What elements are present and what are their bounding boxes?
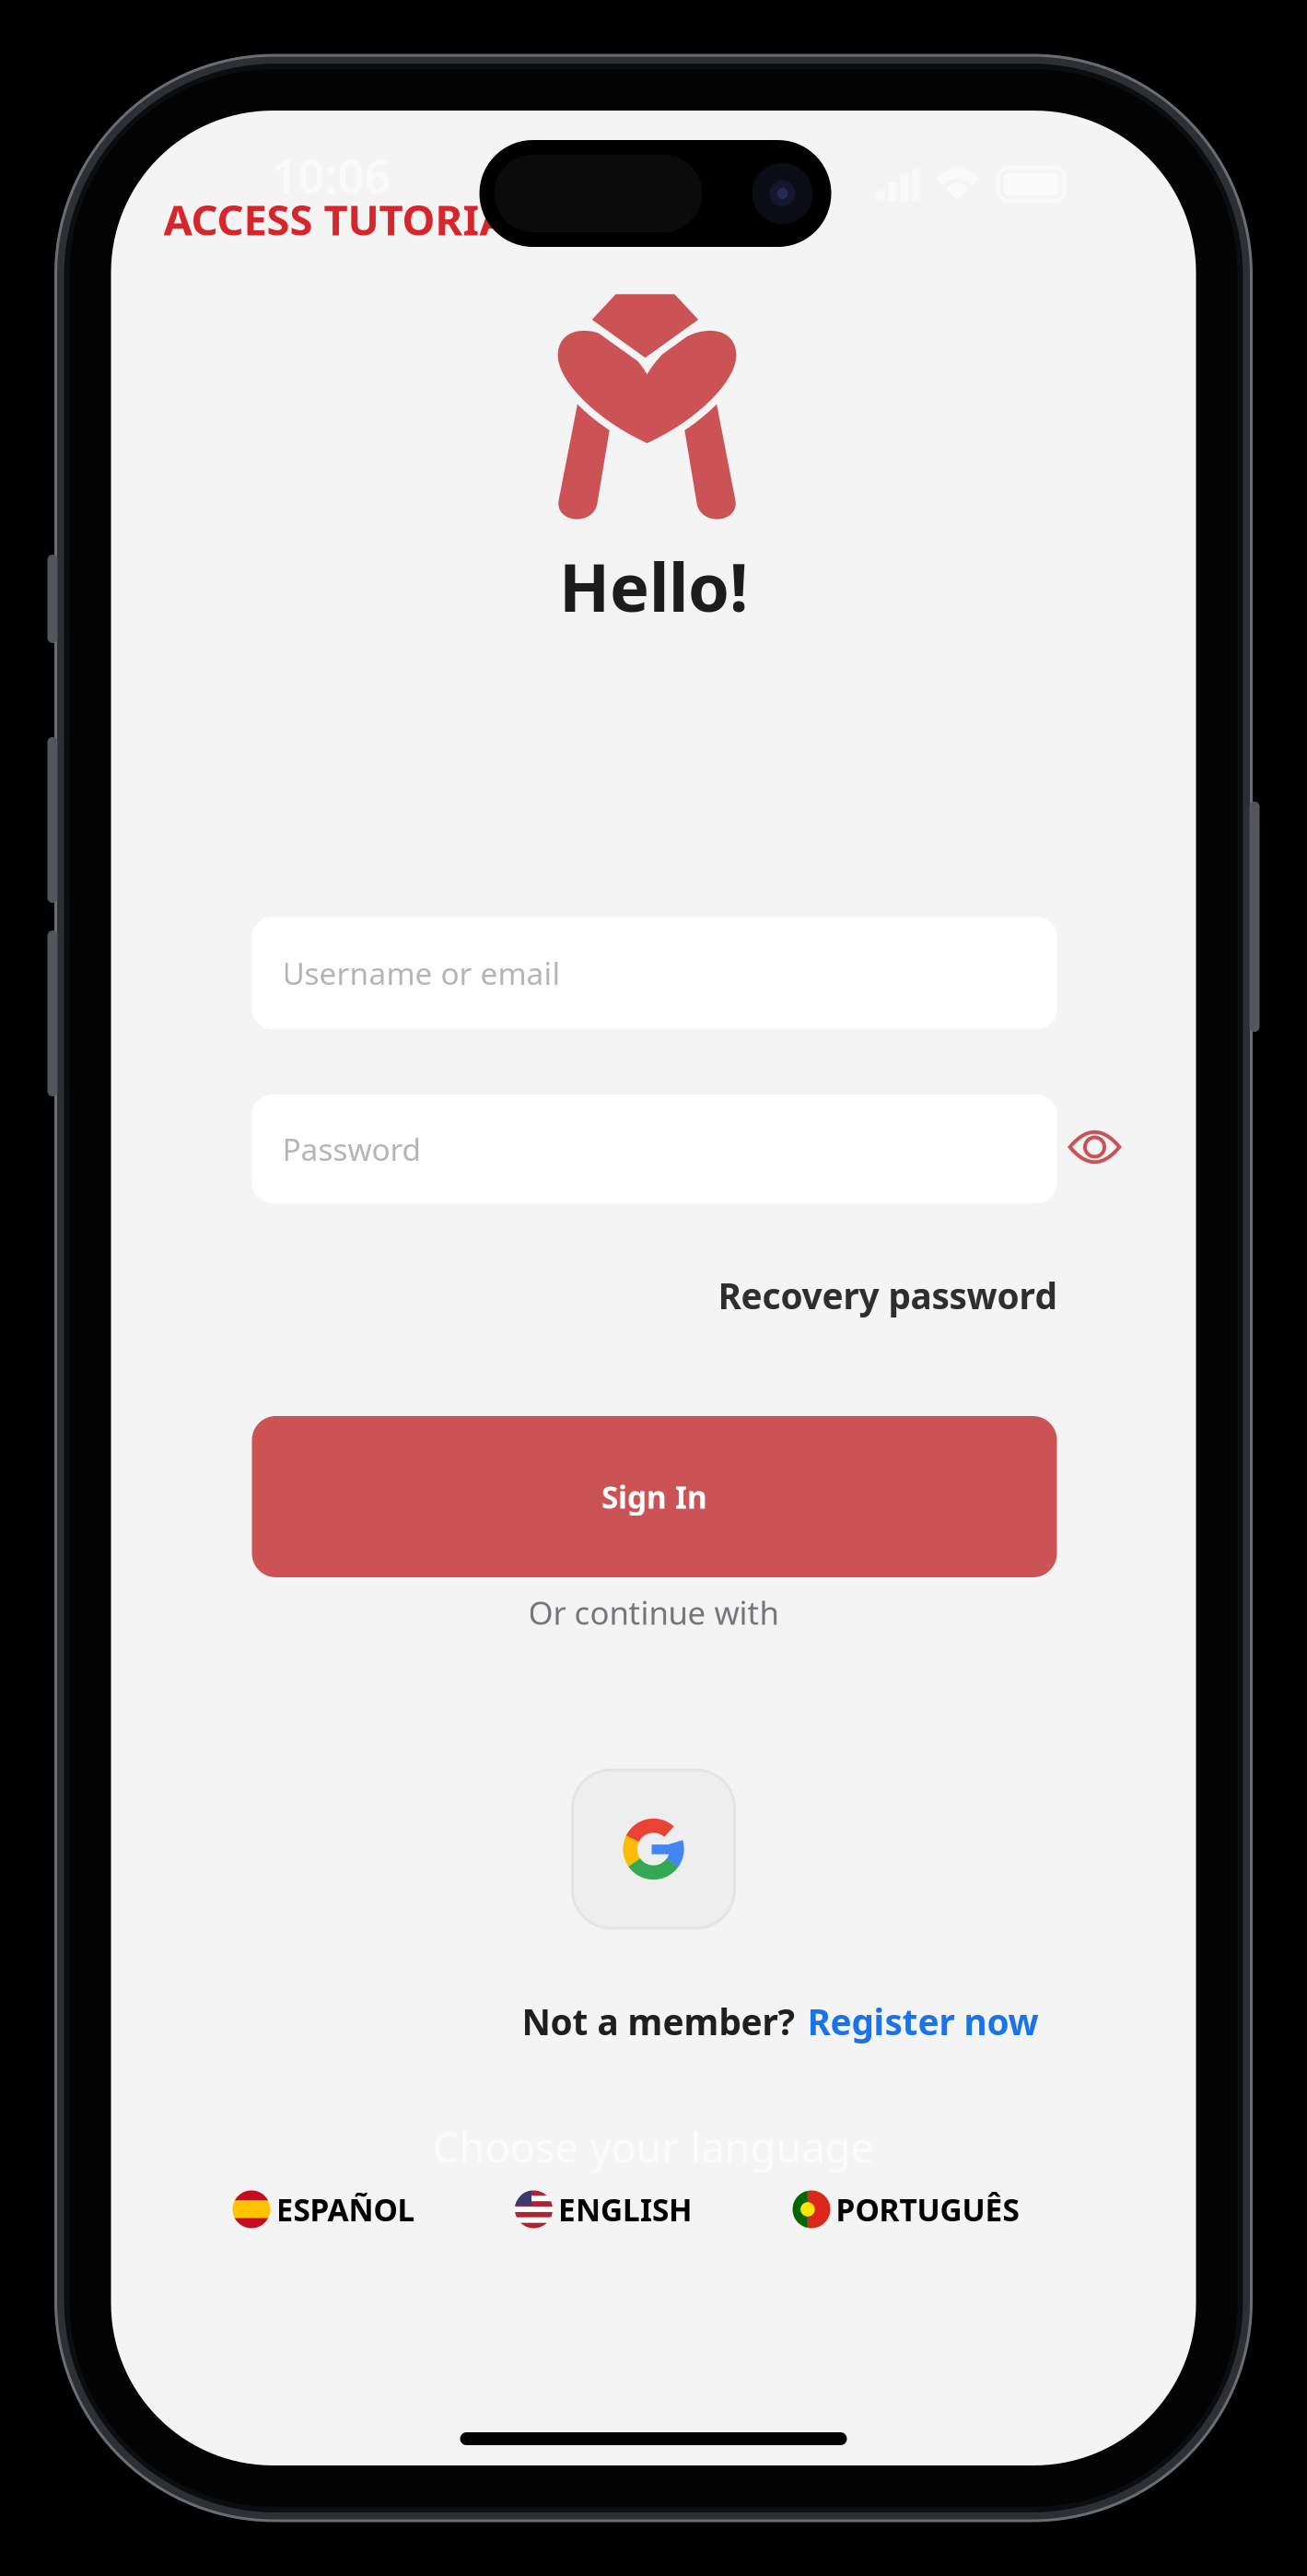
button[interactable]: Username or email — [252, 917, 1057, 1029]
button[interactable]: Sign in with Google — [572, 1770, 735, 1928]
staticText: Register now — [807, 1998, 1039, 2045]
staticText: Sign In — [601, 1476, 707, 1517]
button[interactable]: PORTUGUÊS — [789, 2182, 1023, 2237]
button[interactable]: Sign In — [252, 1416, 1057, 1577]
button[interactable]: Recovery password — [252, 1268, 1057, 1323]
staticText: ESPAÑOL — [276, 2189, 415, 2230]
button[interactable]: ESPAÑOL — [229, 2182, 419, 2237]
staticText: Password — [282, 1129, 421, 1169]
staticText: Hello! — [559, 542, 748, 630]
button[interactable]: Show password — [1054, 1115, 1135, 1179]
staticText: Recovery password — [718, 1272, 1057, 1319]
button[interactable]: Register now — [807, 1998, 1039, 2045]
staticText: ENGLISH — [558, 2189, 693, 2230]
staticText: Not a member? — [522, 1998, 794, 2045]
staticText: Username or email — [282, 953, 560, 993]
staticText: ACCESS TUTORIAL — [163, 192, 531, 247]
staticText: Or continue with — [528, 1591, 779, 1633]
staticText: PORTUGUÊS — [836, 2189, 1019, 2230]
button[interactable]: ENGLISH — [511, 2182, 696, 2237]
button[interactable]: Password — [252, 1095, 1057, 1203]
